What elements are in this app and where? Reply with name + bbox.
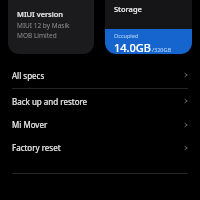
staticText: 14.0GB — [114, 40, 152, 54]
staticText: MIUI 12 by Masik — [17, 21, 70, 30]
staticText: Back up and restore — [12, 96, 183, 107]
staticText: Occupied — [114, 32, 139, 39]
button[interactable]: MIUI version — [8, 0, 94, 54]
button[interactable]: Factory reset — [0, 136, 200, 159]
staticText: All specs — [12, 70, 183, 81]
button[interactable]: Storage — [105, 0, 192, 54]
staticText: Mi Mover — [12, 119, 183, 130]
button[interactable]: Back up and restore — [0, 89, 200, 113]
staticText: MOB Limited — [17, 31, 57, 40]
staticText: Factory reset — [12, 142, 183, 153]
staticText: /320GB — [152, 46, 172, 53]
button[interactable]: All specs — [0, 62, 200, 88]
button[interactable]: Mi Mover — [0, 113, 200, 136]
staticText: MIUI version — [17, 9, 64, 19]
staticText: Storage — [114, 4, 142, 14]
